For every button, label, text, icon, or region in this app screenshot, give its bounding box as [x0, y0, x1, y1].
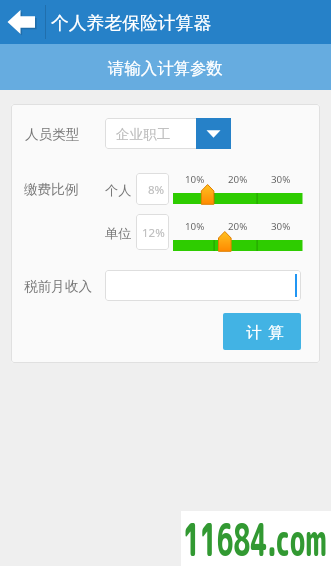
staticText: 11684.com: [183, 506, 328, 566]
button[interactable]: 个人 缴费比例滑块: [173, 185, 302, 205]
button[interactable]: 计 算: [223, 313, 301, 350]
staticText: 20%: [228, 173, 248, 186]
button[interactable]: 选择人员类型: [196, 118, 231, 149]
staticText: 30%: [271, 173, 291, 186]
staticText: 个人养老保险计算器: [51, 12, 212, 34]
button[interactable]: 单位 缴费比例滑块: [173, 232, 302, 252]
button[interactable]: [105, 270, 301, 301]
staticText: 30%: [271, 220, 291, 233]
staticText: 人员类型: [25, 126, 80, 143]
staticText: 单位: [105, 225, 132, 242]
staticText: 10%: [185, 220, 205, 233]
staticText: 20%: [228, 220, 248, 233]
staticText: 10%: [185, 173, 205, 186]
button[interactable]: 企业职工: [105, 118, 231, 149]
staticText: 个人: [105, 182, 132, 199]
staticText: 12%: [142, 225, 165, 241]
staticText: 缴费比例: [24, 181, 79, 198]
staticText: 8%: [148, 182, 165, 198]
staticText: 计 算: [246, 321, 285, 342]
staticText: 企业职工: [116, 126, 171, 143]
button[interactable]: 返回: [0, 0, 44, 44]
staticText: 税前月收入: [24, 278, 92, 295]
staticText: 请输入计算参数: [108, 58, 223, 79]
